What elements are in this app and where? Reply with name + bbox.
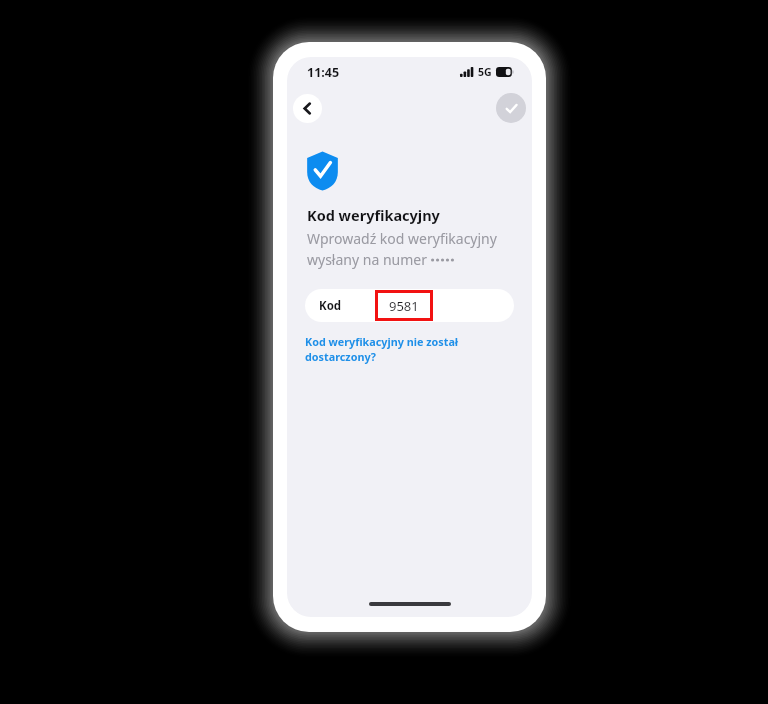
staticText: Wprowadź kod weryfikacyjny <box>307 229 497 248</box>
staticText: 5G <box>478 65 492 79</box>
staticText: Kod <box>319 298 342 314</box>
button[interactable]: Kod <box>305 289 514 322</box>
button[interactable]: Kod weryfikacyjny nie został dostarczony… <box>305 334 522 364</box>
staticText: 11:45 <box>307 64 340 81</box>
button[interactable]: Confirm <box>496 93 526 123</box>
staticText: 9581 <box>389 297 419 315</box>
staticText: Kod weryfikacyjny <box>307 205 440 225</box>
staticText: Kod weryfikacyjny nie został dostarczony… <box>305 334 522 364</box>
staticText: wysłany na numer <box>307 250 431 269</box>
button[interactable]: Back <box>293 94 322 123</box>
